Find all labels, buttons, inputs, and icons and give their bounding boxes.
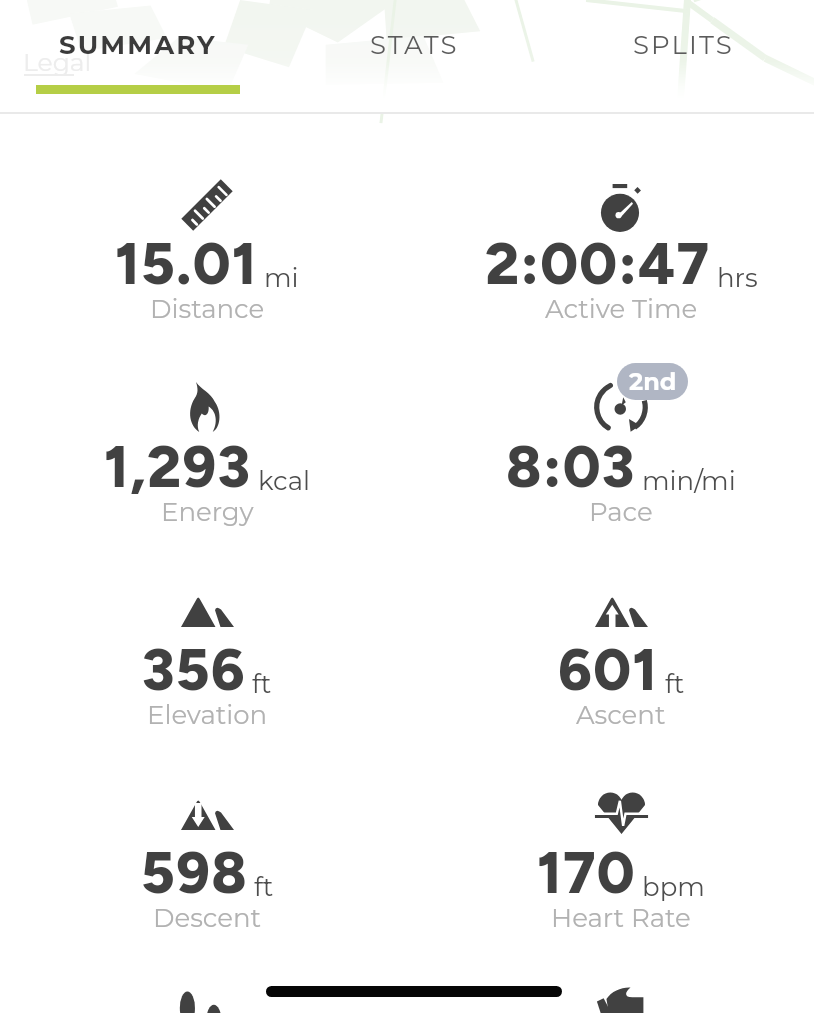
- staticText: hrs: [717, 262, 758, 294]
- button[interactable]: 601: [431, 635, 811, 737]
- staticText: Ascent: [576, 699, 666, 731]
- staticText: bpm: [642, 871, 705, 903]
- button[interactable]: SPLITS: [545, 0, 814, 112]
- button[interactable]: 1,293: [17, 432, 397, 534]
- staticText: kcal: [258, 465, 310, 497]
- staticText: Energy: [161, 496, 254, 528]
- staticText: 2:00:47: [485, 229, 711, 299]
- staticText: Legal: [23, 47, 92, 77]
- staticText: SPLITS: [633, 29, 734, 61]
- staticText: 598: [141, 838, 248, 908]
- button[interactable]: STATS: [276, 0, 552, 112]
- staticText: Distance: [150, 293, 265, 325]
- staticText: 356: [142, 635, 246, 705]
- button[interactable]: 2nd: [617, 363, 688, 400]
- staticText: STATS: [370, 29, 459, 61]
- button[interactable]: 15.01: [17, 229, 397, 331]
- staticText: 15.01: [115, 229, 258, 299]
- staticText: mi: [264, 262, 299, 294]
- staticText: 8:03: [506, 432, 636, 502]
- button[interactable]: 8:03: [431, 432, 811, 534]
- button[interactable]: Steps: [179, 991, 235, 1013]
- staticText: 1,293: [104, 432, 252, 502]
- staticText: Descent: [153, 902, 262, 934]
- staticText: Active Time: [545, 293, 698, 325]
- staticText: ft: [254, 871, 274, 903]
- button[interactable]: 2:00:47: [431, 229, 811, 331]
- button[interactable]: 356: [17, 635, 397, 737]
- staticText: Heart Rate: [551, 902, 691, 934]
- button[interactable]: 170: [431, 838, 811, 940]
- staticText: SUMMARY: [59, 29, 217, 61]
- staticText: ft: [252, 668, 272, 700]
- button[interactable]: Cadence: [593, 984, 649, 1013]
- staticText: Pace: [589, 496, 653, 528]
- button[interactable]: SUMMARY: [0, 0, 276, 112]
- staticText: 170: [537, 838, 636, 908]
- staticText: min/mi: [642, 465, 736, 497]
- button[interactable]: 598: [17, 838, 397, 940]
- staticText: ft: [665, 668, 685, 700]
- staticText: Elevation: [147, 699, 268, 731]
- staticText: 2nd: [629, 367, 677, 396]
- staticText: 601: [558, 635, 659, 705]
